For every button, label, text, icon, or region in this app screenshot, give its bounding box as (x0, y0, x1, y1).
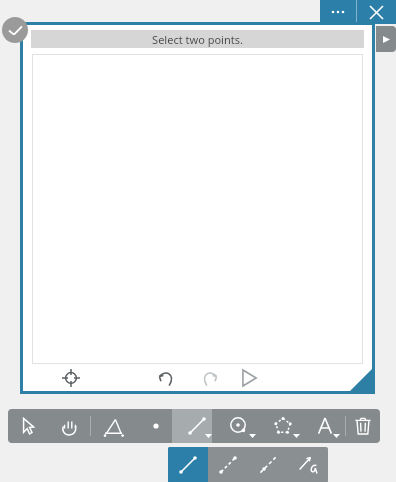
button[interactable]: Undo (151, 364, 183, 391)
button[interactable]: Text tool (305, 409, 345, 443)
button[interactable]: Confirm (2, 17, 28, 43)
staticText: Select two points. (152, 32, 243, 47)
button[interactable]: Polygon tool (261, 409, 305, 443)
button[interactable]: Select (8, 409, 48, 443)
button[interactable]: Circle tool (217, 409, 261, 443)
button[interactable]: Point (135, 409, 177, 443)
button[interactable]: Line tool (177, 409, 217, 443)
button[interactable]: More options (320, 0, 356, 24)
button[interactable]: Line (248, 447, 288, 482)
button[interactable]: Ray (208, 447, 248, 482)
button[interactable]: Delete (346, 409, 380, 443)
button[interactable]: Center view (56, 364, 86, 391)
button[interactable]: Close (357, 0, 396, 24)
button[interactable]: Play (233, 364, 265, 391)
button[interactable]: Segment (168, 447, 208, 482)
button[interactable]: Vector (288, 447, 328, 482)
button[interactable]: Angle tool (91, 409, 135, 443)
button[interactable]: Redo (193, 364, 225, 391)
button[interactable]: Pan (48, 409, 90, 443)
button[interactable]: Open panel (376, 26, 396, 52)
